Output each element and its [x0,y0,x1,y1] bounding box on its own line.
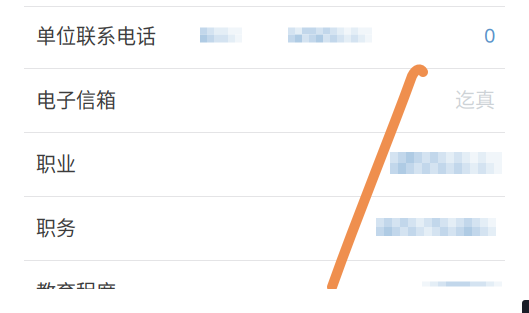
staticText: 单位联系电话 [36,20,156,49]
button[interactable]: 职业 [0,131,529,195]
button[interactable]: 教育程度 [0,259,529,313]
staticText: 电子信箱 [36,84,116,113]
button[interactable]: 单位联系电话 [0,3,529,67]
staticText: 职务 [36,212,76,241]
button[interactable]: 职务 [0,195,529,259]
staticText: 迄真 [455,84,495,113]
staticText: 职业 [36,148,76,177]
staticText: 0 [484,22,495,48]
button[interactable]: 电子信箱 [0,67,529,131]
staticText: 教育程度 [36,276,116,305]
